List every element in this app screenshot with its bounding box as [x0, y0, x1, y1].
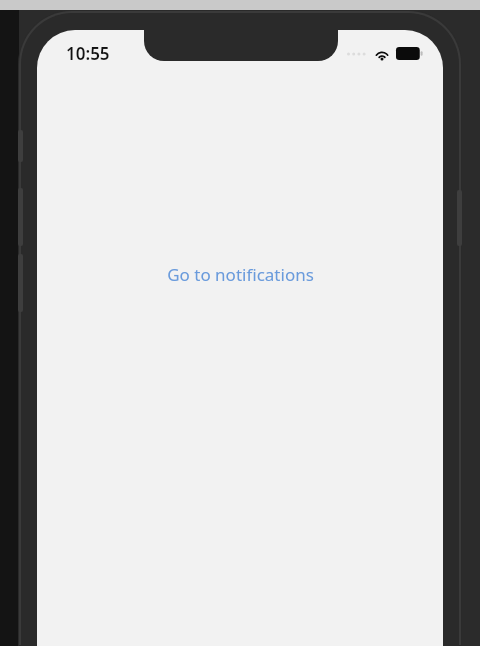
button[interactable]: Go to notifications [161, 259, 320, 290]
staticText: 10:55 [66, 42, 110, 65]
other: Camera and sensor notch [144, 14, 338, 61]
staticText: Go to notifications [167, 263, 314, 286]
